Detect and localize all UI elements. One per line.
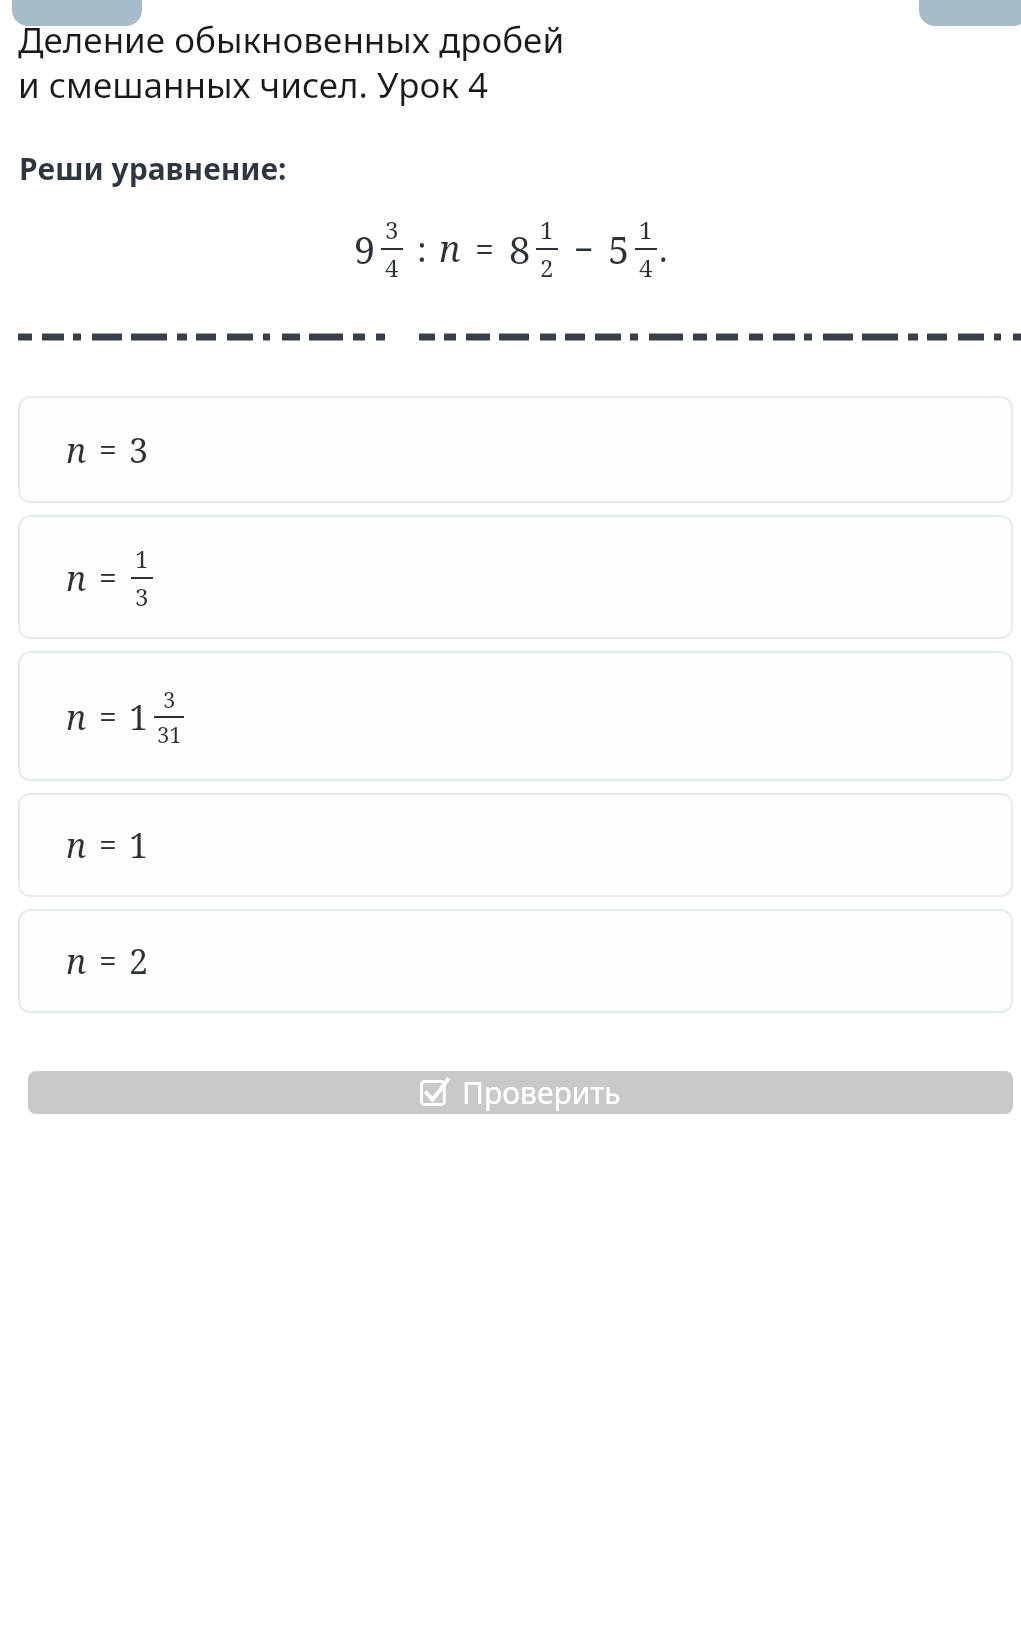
- staticText: 4: [385, 251, 399, 284]
- staticText: 3: [129, 427, 149, 473]
- staticText: 4: [639, 251, 653, 284]
- button[interactable]: n: [18, 793, 1013, 897]
- staticText: n: [66, 427, 87, 473]
- button[interactable]: Confirm: [919, 0, 1021, 26]
- staticText: n: [66, 938, 87, 984]
- staticText: 5: [608, 223, 630, 275]
- staticText: 2: [540, 251, 554, 284]
- staticText: n: [66, 822, 87, 868]
- staticText: n: [439, 224, 461, 273]
- button[interactable]: n: [18, 909, 1013, 1013]
- staticText: 8: [509, 223, 531, 275]
- staticText: 3: [135, 580, 149, 613]
- staticText: 1: [129, 822, 149, 868]
- staticText: 3: [385, 213, 399, 246]
- button[interactable]: Minus: [12, 0, 142, 26]
- staticText: Реши уравнение:: [19, 148, 287, 189]
- staticText: =: [99, 695, 117, 739]
- staticText: =: [475, 226, 495, 272]
- staticText: n: [66, 555, 87, 601]
- staticText: −: [574, 226, 594, 272]
- staticText: 9: [354, 223, 376, 275]
- staticText: =: [99, 428, 117, 472]
- staticText: 31: [157, 719, 182, 749]
- staticText: =: [99, 556, 117, 600]
- staticText: .: [659, 226, 668, 272]
- staticText: 1: [540, 213, 554, 246]
- staticText: =: [99, 823, 117, 867]
- button[interactable]: n: [18, 396, 1013, 503]
- button[interactable]: n: [18, 651, 1013, 781]
- staticText: Проверить: [462, 1072, 621, 1113]
- button[interactable]: n: [18, 515, 1013, 639]
- staticText: 3: [163, 684, 176, 714]
- staticText: :: [417, 226, 427, 272]
- staticText: Деление обыкновенных дробей и смешанных …: [18, 16, 565, 108]
- staticText: 1: [639, 213, 653, 246]
- staticText: 2: [129, 938, 149, 984]
- staticText: 1: [135, 542, 149, 575]
- button[interactable]: Проверить: [28, 1071, 1013, 1114]
- staticText: n: [66, 694, 87, 740]
- staticText: =: [99, 939, 117, 983]
- staticText: 1: [129, 694, 149, 740]
